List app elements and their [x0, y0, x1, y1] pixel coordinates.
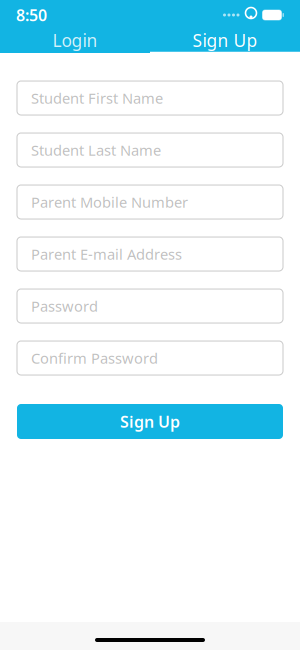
button[interactable]: Sign Up [150, 30, 300, 53]
staticText: Confirm Password [31, 348, 158, 368]
button[interactable]: Parent Mobile Number [17, 185, 283, 219]
button[interactable]: Password [17, 289, 283, 323]
staticText: Sign Up [120, 411, 180, 432]
button[interactable]: Student Last Name [17, 133, 283, 167]
staticText: Parent E-mail Address [31, 244, 182, 264]
staticText: Parent Mobile Number [31, 192, 188, 212]
staticText: Sign Up [192, 29, 257, 52]
button[interactable]: Login [0, 30, 150, 53]
button[interactable]: Sign Up [17, 404, 283, 439]
button[interactable]: Parent E-mail Address [17, 237, 283, 271]
staticText: Student First Name [31, 88, 163, 108]
staticText: Student Last Name [31, 140, 161, 160]
staticText: Login [52, 29, 97, 52]
button[interactable]: Confirm Password [17, 341, 283, 375]
button[interactable]: Student First Name [17, 81, 283, 115]
staticText: 8:50 [16, 4, 47, 26]
staticText: Password [31, 296, 98, 316]
